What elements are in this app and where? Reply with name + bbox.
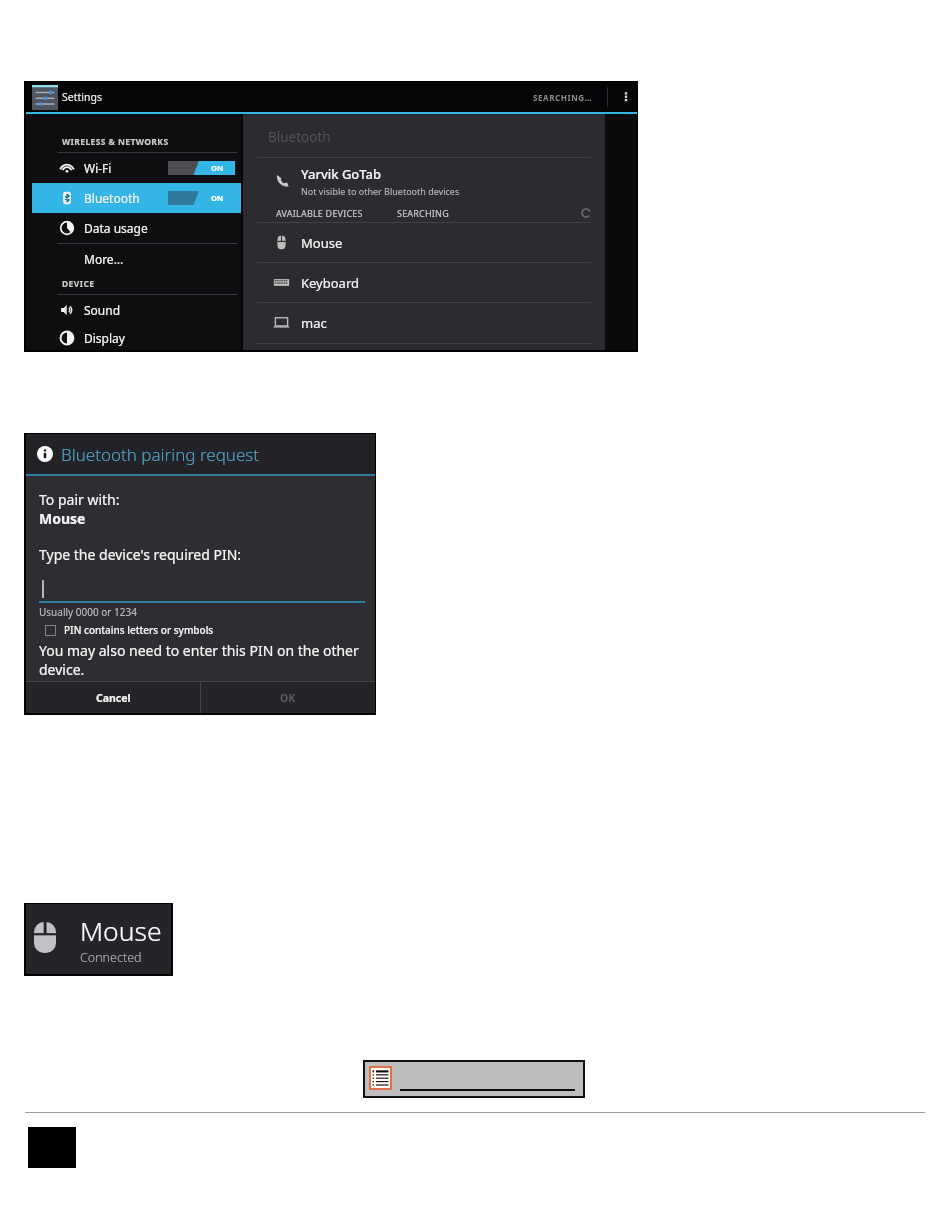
button[interactable]: PIN contains letters or symbols <box>45 623 214 637</box>
staticText: PIN contains letters or symbols <box>64 623 214 637</box>
button[interactable]: Mouse <box>243 223 605 262</box>
staticText: You may also need to enter this PIN on t… <box>39 641 365 679</box>
staticText: SEARCHING <box>397 207 449 219</box>
staticText: Bluetooth pairing request <box>61 443 260 466</box>
staticText: Data usage <box>84 220 148 236</box>
staticText: More… <box>84 251 124 267</box>
staticText: SEARCHING… <box>533 92 593 103</box>
button[interactable]: Settings app icon <box>32 85 58 110</box>
staticText: ON <box>211 193 224 203</box>
button[interactable]: Data usage <box>32 213 241 243</box>
staticText: Mouse <box>301 234 343 252</box>
staticText: Mouse <box>80 913 162 949</box>
staticText: Not visible to other Bluetooth devices <box>301 185 460 197</box>
button[interactable]: Keyboard <box>243 263 605 302</box>
button[interactable]: Toggle on <box>168 191 235 205</box>
staticText: WIRELESS & NETWORKS <box>62 136 169 148</box>
button[interactable]: Display <box>32 325 241 350</box>
staticText: Keyboard <box>301 274 360 292</box>
staticText: OK <box>280 691 296 705</box>
staticText: Wi-Fi <box>84 160 112 176</box>
staticText: DEVICE <box>62 278 95 290</box>
button[interactable]: List document <box>369 1066 392 1090</box>
staticText: mac <box>301 314 327 332</box>
staticText: Cancel <box>96 691 131 705</box>
staticText: Sound <box>84 302 121 318</box>
button[interactable]: Wi-Fi <box>32 153 241 183</box>
staticText: Connected <box>80 949 142 966</box>
staticText: Yarvik GoTab <box>301 165 382 183</box>
button[interactable]: More options <box>619 90 633 104</box>
staticText: Settings <box>62 90 102 104</box>
staticText: Bluetooth <box>268 128 331 146</box>
button[interactable]: Bluetooth <box>32 183 241 213</box>
button[interactable]: Sound <box>32 295 241 325</box>
button[interactable]: mac <box>243 303 605 342</box>
button[interactable]: Cancel <box>26 682 200 713</box>
staticText: Type the device's required PIN: <box>39 545 242 564</box>
staticText: Usually 0000 or 1234 <box>39 605 137 619</box>
staticText: AVAILABLE DEVICES <box>276 207 363 219</box>
button[interactable]: More… <box>32 244 241 274</box>
button[interactable]: Yarvik GoTab <box>243 158 605 203</box>
staticText: ON <box>211 163 224 173</box>
staticText: Mouse <box>39 509 86 528</box>
button[interactable]: Toggle on <box>168 161 235 175</box>
staticText: Bluetooth <box>84 190 140 206</box>
button[interactable]: OK <box>201 682 375 713</box>
staticText: Display <box>84 330 125 346</box>
staticText: To pair with: <box>39 490 120 509</box>
